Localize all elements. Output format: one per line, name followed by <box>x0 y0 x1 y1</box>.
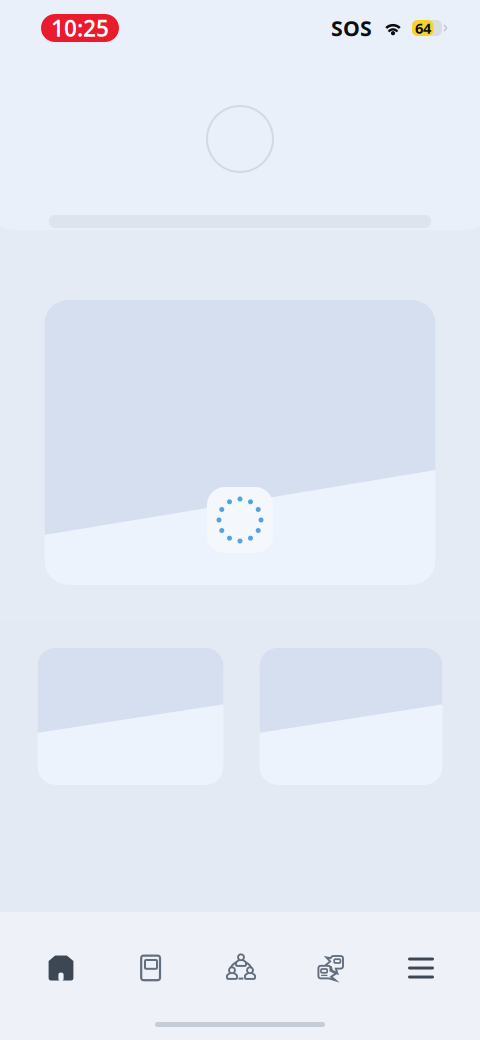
button[interactable]: Messages <box>300 938 362 998</box>
staticText: 64 <box>415 18 431 38</box>
button[interactable]: More <box>390 938 452 998</box>
staticText: SOS <box>331 14 372 42</box>
button[interactable]: Home <box>30 938 92 998</box>
staticText: 10:25 <box>51 13 109 43</box>
button[interactable]: Groups <box>210 938 272 998</box>
button[interactable]: Library <box>120 938 182 998</box>
